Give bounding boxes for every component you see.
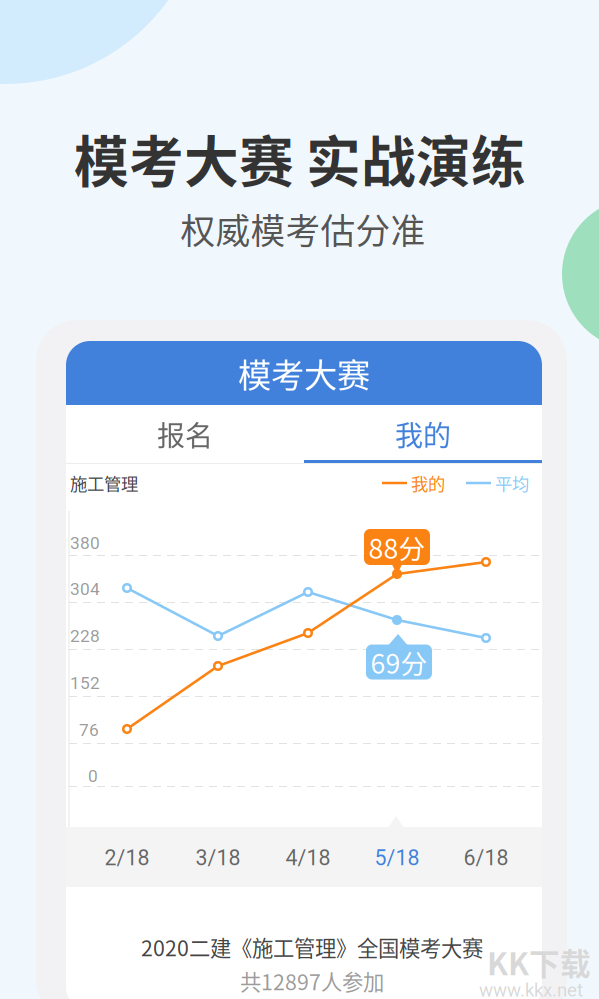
staticText: 报名 xyxy=(157,414,213,454)
staticText: 88分 xyxy=(368,528,425,566)
staticText: 我的 xyxy=(411,470,445,496)
staticText: 69分 xyxy=(370,643,427,681)
staticText: KK下载 xyxy=(487,940,591,984)
staticText: 304 xyxy=(70,579,100,599)
staticText: www.kkx.net xyxy=(479,979,583,999)
staticText: 2/18 xyxy=(104,845,149,870)
staticText: 模考大赛 实战演练 xyxy=(74,118,526,198)
staticText: 6/18 xyxy=(463,845,508,870)
staticText: 平均 xyxy=(495,470,529,496)
staticText: 权威模考估分准 xyxy=(180,204,425,254)
staticText: 5/18 xyxy=(374,845,419,870)
button[interactable]: 我的 xyxy=(304,405,542,463)
staticText: 施工管理 xyxy=(70,470,138,496)
staticText: 4/18 xyxy=(285,845,330,870)
staticText: 76 xyxy=(79,720,99,740)
staticText: 3/18 xyxy=(195,845,240,870)
staticText: 0 xyxy=(88,766,98,786)
staticText: 我的 xyxy=(395,414,451,454)
staticText: 模考大赛 xyxy=(238,349,370,397)
button[interactable]: 报名 xyxy=(66,405,304,463)
staticText: 228 xyxy=(70,626,100,646)
staticText: 380 xyxy=(70,533,100,553)
staticText: 共12897人参加 xyxy=(240,966,384,996)
staticText: 2020二建《施工管理》全国模考大赛 xyxy=(141,932,483,962)
staticText: 152 xyxy=(70,673,100,693)
